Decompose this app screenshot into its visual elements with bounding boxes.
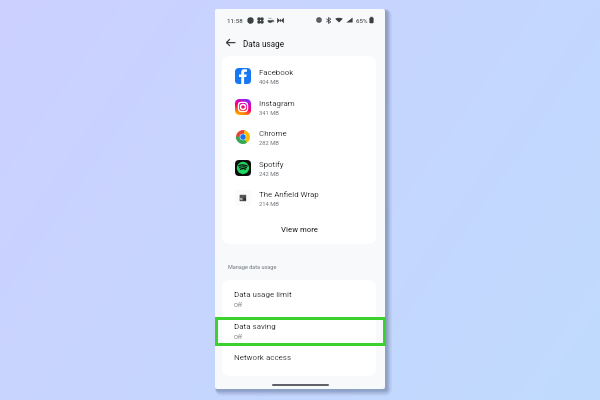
staticText: Data saving	[234, 322, 276, 331]
button[interactable]: Back	[218, 31, 242, 55]
staticText: 282 MB	[259, 140, 279, 147]
staticText: Off	[234, 334, 243, 341]
staticText: 242 MB	[259, 171, 279, 178]
staticText: 214 MB	[259, 201, 279, 208]
staticText: 11:58	[227, 17, 243, 24]
button[interactable]: Data saving	[222, 312, 376, 344]
staticText: Data usage	[243, 39, 285, 49]
staticText: View more	[281, 225, 318, 234]
staticText: Facebook	[259, 68, 294, 77]
button[interactable]: Chrome	[222, 121, 376, 152]
staticText: 65%	[356, 17, 368, 24]
button[interactable]: View more	[222, 216, 376, 242]
button[interactable]: Instagram	[222, 91, 376, 122]
staticText: Off	[234, 302, 243, 309]
staticText: Manage data usage	[228, 264, 277, 270]
button[interactable]: Facebook	[222, 60, 376, 91]
staticText: Instagram	[259, 99, 295, 108]
button[interactable]: Data usage limit	[222, 280, 376, 312]
staticText: Chrome	[259, 129, 287, 138]
staticText: Network access	[234, 353, 292, 362]
staticText: 341 MB	[259, 110, 279, 117]
staticText: Data usage limit	[234, 290, 292, 299]
button[interactable]: The Anfield Wrap	[222, 182, 376, 213]
button[interactable]: Network access	[222, 343, 376, 375]
staticText: The Anfield Wrap	[259, 190, 319, 199]
button[interactable]: Spotify	[222, 152, 376, 183]
staticText: Spotify	[259, 160, 284, 169]
staticText: 404 MB	[259, 79, 279, 86]
